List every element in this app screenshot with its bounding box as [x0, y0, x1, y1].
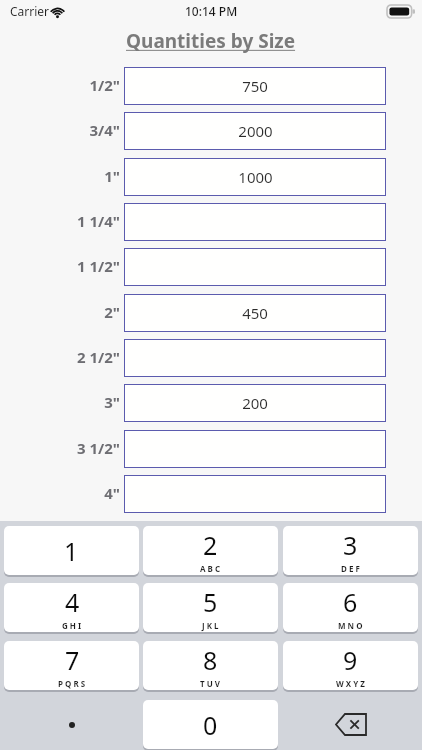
staticText: 5	[203, 585, 218, 619]
button[interactable]: 6	[283, 583, 418, 632]
staticText: 0	[203, 708, 218, 742]
staticText: 2"	[104, 302, 120, 322]
staticText: 3"	[104, 392, 120, 412]
staticText: W X Y Z	[336, 678, 365, 689]
staticText: 1 1/4"	[76, 211, 120, 231]
staticText: J K L	[202, 620, 219, 631]
staticText: P Q R S	[58, 678, 86, 689]
staticText: 450	[242, 303, 268, 323]
button[interactable]: Decimal point	[4, 700, 139, 749]
staticText: 6	[343, 585, 358, 619]
staticText: 1 1/2"	[76, 256, 120, 276]
staticText: Carrier	[10, 3, 50, 19]
button[interactable]	[124, 475, 386, 513]
staticText: 1"	[104, 166, 120, 186]
staticText: 2	[203, 528, 218, 562]
staticText: 2 1/2"	[76, 347, 120, 367]
button[interactable]: 9	[283, 641, 418, 690]
staticText: 8	[203, 643, 218, 677]
button[interactable]: Backspace	[283, 700, 418, 749]
staticText: 10:14 PM	[185, 3, 238, 19]
staticText: 3	[343, 528, 358, 562]
staticText: 200	[242, 393, 268, 413]
staticText: 9	[343, 643, 358, 677]
staticText: D E F	[341, 563, 360, 574]
button[interactable]: 2000	[124, 112, 386, 150]
staticText: 7	[65, 643, 80, 677]
staticText: 1/2"	[89, 75, 120, 95]
button[interactable]	[124, 339, 386, 377]
staticText: 3/4"	[89, 120, 120, 140]
staticText: Quantities by Size	[126, 28, 296, 54]
staticText: 750	[242, 76, 268, 96]
staticText: M N O	[338, 620, 363, 631]
button[interactable]: 7	[4, 641, 139, 690]
staticText: 1	[64, 534, 79, 568]
staticText: 4	[65, 585, 80, 619]
button[interactable]: 200	[124, 384, 386, 422]
button[interactable]: 0	[143, 700, 278, 749]
button[interactable]: 8	[143, 641, 278, 690]
button[interactable]: 2	[143, 526, 278, 575]
staticText: A B C	[200, 563, 221, 574]
button[interactable]: 1000	[124, 158, 386, 196]
staticText: T U V	[200, 678, 221, 689]
button[interactable]: 4	[4, 583, 139, 632]
staticText: 1000	[238, 167, 273, 187]
button[interactable]: 450	[124, 294, 386, 332]
button[interactable]: 1	[4, 526, 139, 575]
button[interactable]: 750	[124, 67, 386, 105]
button[interactable]	[124, 203, 386, 241]
staticText: 4"	[104, 483, 120, 503]
button[interactable]: 3	[283, 526, 418, 575]
button[interactable]	[124, 430, 386, 468]
button[interactable]: 5	[143, 583, 278, 632]
staticText: 3 1/2"	[76, 438, 120, 458]
staticText: G H I	[62, 620, 82, 631]
staticText: 2000	[238, 121, 273, 141]
button[interactable]	[124, 248, 386, 286]
